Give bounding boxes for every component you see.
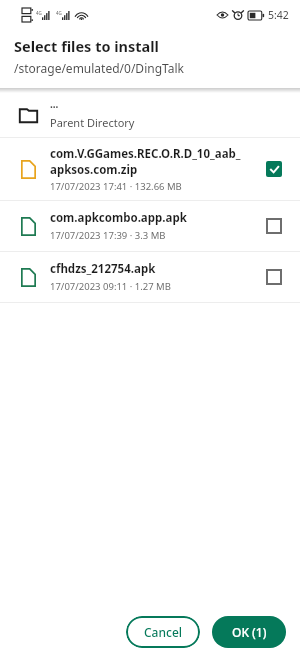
staticText: 4G [36, 10, 42, 16]
button[interactable]: ··· [0, 93, 300, 137]
button[interactable]: com.apkcombo.app.apk [0, 201, 300, 251]
staticText: ··· [50, 100, 59, 114]
button[interactable]: cfhdzs_212754.apk [0, 252, 300, 302]
button[interactable]: Not selected [260, 263, 288, 291]
button[interactable]: com.V.GGames.REC.O.R.D_10_aab_ apksos.co… [0, 138, 300, 200]
staticText: com.V.GGames.REC.O.R.D_10_aab_ apksos.co… [50, 146, 241, 177]
staticText: Parent Directory [50, 115, 135, 130]
staticText: 17/07/2023 17:41 · 132.66 MB [50, 180, 182, 193]
staticText: 17/07/2023 17:39 · 3.3 MB [50, 229, 166, 242]
button[interactable]: OK (1) [212, 616, 286, 648]
staticText: com.apkcombo.app.apk [50, 210, 187, 226]
staticText: 17/07/2023 09:11 · 1.27 MB [50, 280, 171, 293]
staticText: cfhdzs_212754.apk [50, 261, 156, 277]
staticText: 4G [56, 10, 62, 16]
button[interactable]: Selected [260, 155, 288, 183]
staticText: Cancel [144, 624, 183, 640]
button[interactable]: Cancel [126, 616, 200, 648]
staticText: OK (1) [232, 624, 267, 640]
staticText: Select files to install [14, 36, 159, 56]
staticText: 5:42 [268, 8, 289, 22]
staticText: /storage/emulated/0/DingTalk [14, 60, 184, 76]
button[interactable]: Not selected [260, 212, 288, 240]
